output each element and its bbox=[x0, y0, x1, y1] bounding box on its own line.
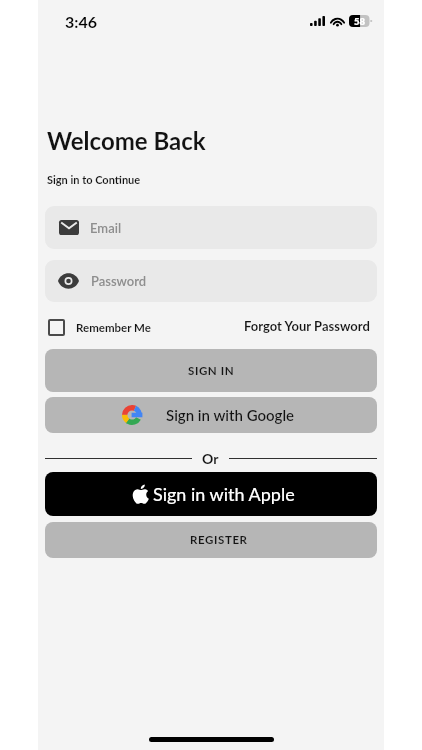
button[interactable]: SIGN IN bbox=[45, 349, 377, 392]
staticText: 3:46 bbox=[65, 12, 97, 31]
button[interactable]: Forgot Your Password bbox=[244, 315, 370, 337]
button[interactable]: Show password bbox=[45, 260, 377, 302]
staticText: Password bbox=[91, 273, 147, 289]
staticText: Remember Me bbox=[76, 321, 151, 335]
staticText: SIGN IN bbox=[188, 364, 235, 378]
staticText: Welcome Back bbox=[47, 126, 206, 155]
other: Email bbox=[59, 220, 79, 235]
staticText: Sign in to Continue bbox=[47, 173, 141, 186]
staticText: REGISTER bbox=[190, 533, 248, 547]
button[interactable]: Sign in with Apple bbox=[45, 472, 377, 516]
button[interactable]: REGISTER bbox=[45, 522, 377, 558]
button[interactable]: Email bbox=[45, 206, 377, 249]
button[interactable]: Sign in with Google bbox=[45, 397, 377, 433]
staticText: Email bbox=[90, 220, 122, 236]
staticText: Or bbox=[202, 450, 219, 467]
staticText: Sign in with Google bbox=[166, 406, 295, 424]
staticText: Sign in with Apple bbox=[153, 483, 295, 505]
button[interactable]: Remember Me bbox=[48, 316, 151, 339]
other: Show password bbox=[58, 274, 79, 288]
staticText: 58 bbox=[354, 16, 366, 27]
